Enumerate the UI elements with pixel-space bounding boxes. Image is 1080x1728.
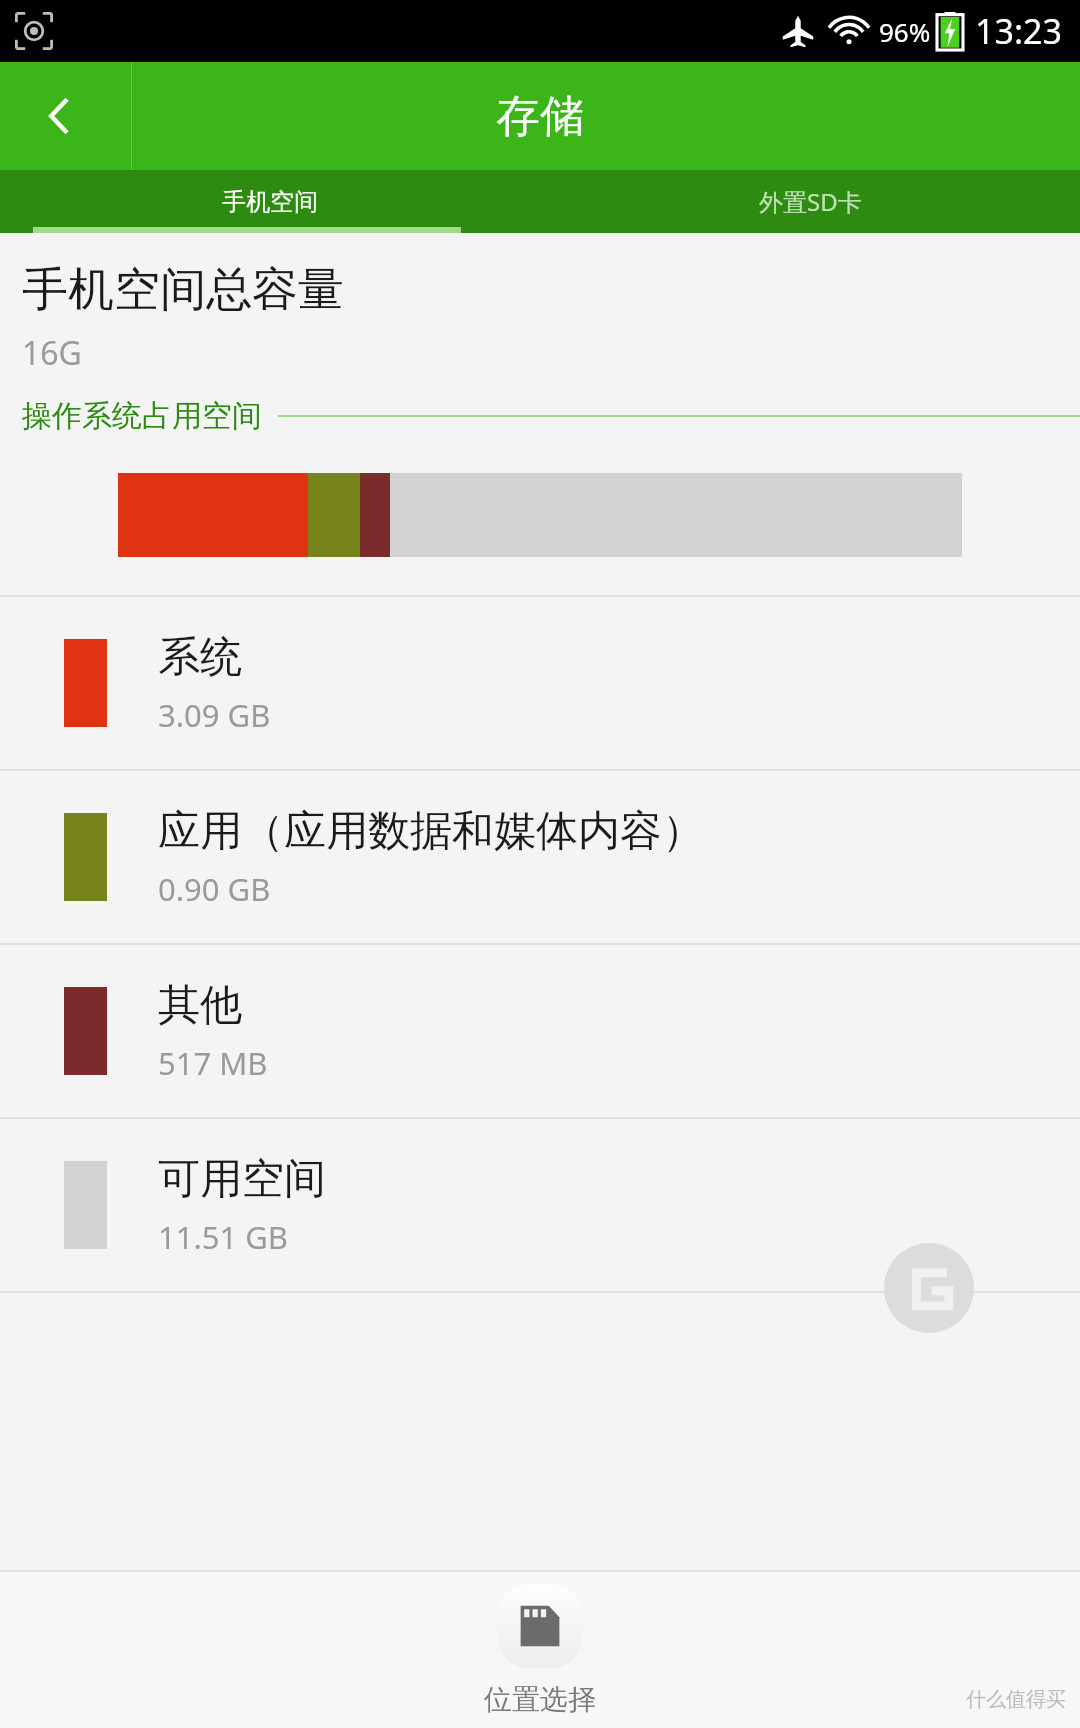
button[interactable]: 系统 bbox=[0, 597, 1080, 769]
staticText: 存储 bbox=[496, 89, 584, 144]
staticText: 操作系统占用空间 bbox=[22, 397, 262, 435]
staticText: 应用（应用数据和媒体内容） bbox=[158, 805, 704, 858]
staticText: 系统 bbox=[158, 631, 242, 684]
staticText: 手机空间 bbox=[222, 187, 318, 217]
staticText: 可用空间 bbox=[158, 1153, 326, 1206]
staticText: 11.51 GB bbox=[158, 1216, 289, 1258]
staticText: 96% bbox=[879, 14, 931, 49]
staticText: 什么值得买 bbox=[966, 1687, 1066, 1712]
staticText: 0.90 GB bbox=[158, 868, 271, 910]
button[interactable]: Back bbox=[0, 62, 120, 170]
staticText: 3.09 GB bbox=[158, 694, 271, 736]
button[interactable]: 位置选择 bbox=[484, 1584, 596, 1717]
button[interactable]: 应用（应用数据和媒体内容） bbox=[0, 771, 1080, 943]
staticText: 其他 bbox=[158, 979, 242, 1032]
button[interactable]: 可用空间 bbox=[0, 1119, 1080, 1291]
button[interactable]: 其他 bbox=[0, 945, 1080, 1117]
staticText: 外置SD卡 bbox=[759, 185, 862, 218]
staticText: 位置选择 bbox=[484, 1682, 596, 1717]
staticText: 517 MB bbox=[158, 1042, 268, 1084]
button[interactable]: 外置SD卡 bbox=[540, 170, 1080, 233]
staticText: 手机空间总容量 bbox=[22, 261, 344, 319]
staticText: 13:23 bbox=[975, 8, 1062, 54]
staticText: 16G bbox=[22, 331, 82, 375]
button[interactable]: 手机空间 bbox=[0, 170, 540, 233]
